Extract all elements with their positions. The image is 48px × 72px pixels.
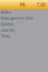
staticText: Zeta eta: [1, 27, 14, 33]
staticText: Hi: [20, 1, 25, 8]
staticText: Theta: [1, 33, 10, 39]
staticText: Epsilon: [1, 21, 13, 27]
staticText: Alpha: [1, 9, 11, 15]
staticText: Beta gamma delta: [1, 15, 33, 21]
staticText: Edit: [37, 1, 46, 8]
